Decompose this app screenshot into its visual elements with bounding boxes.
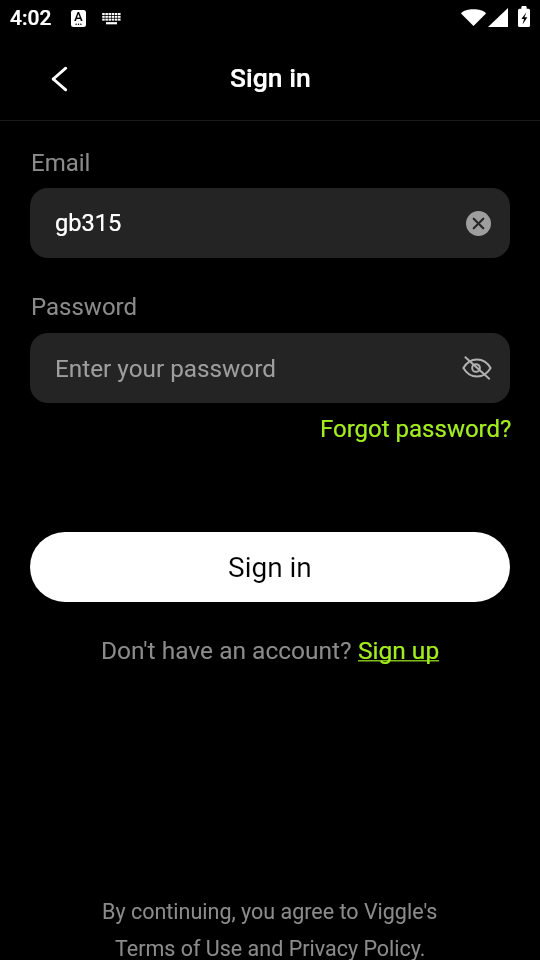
staticText: Sign up xyxy=(358,636,440,665)
button[interactable]: Sign in xyxy=(30,532,510,602)
button[interactable]: Back xyxy=(36,55,84,103)
button[interactable]: gb315 xyxy=(30,188,510,258)
staticText: A xyxy=(74,10,83,24)
staticText: Terms of Use and Privacy Policy. xyxy=(115,936,426,960)
staticText: Forgot password? xyxy=(320,415,512,443)
staticText: Sign in xyxy=(230,62,311,93)
staticText: Enter your password xyxy=(55,354,276,382)
staticText: Sign in xyxy=(228,551,312,584)
button[interactable]: Enter your password xyxy=(30,333,510,403)
staticText: gb315 xyxy=(55,209,122,237)
button[interactable]: Sign up xyxy=(358,636,440,665)
staticText: Password xyxy=(31,293,138,321)
button[interactable]: Forgot password? xyxy=(320,415,512,443)
staticText: 4:02 xyxy=(10,6,52,31)
button[interactable]: Show password xyxy=(455,346,499,390)
staticText: Email xyxy=(31,149,91,177)
staticText: Don't have an account? xyxy=(101,636,358,665)
staticText: By continuing, you agree to Viggle's xyxy=(102,899,438,924)
button[interactable]: Clear email xyxy=(458,203,498,243)
